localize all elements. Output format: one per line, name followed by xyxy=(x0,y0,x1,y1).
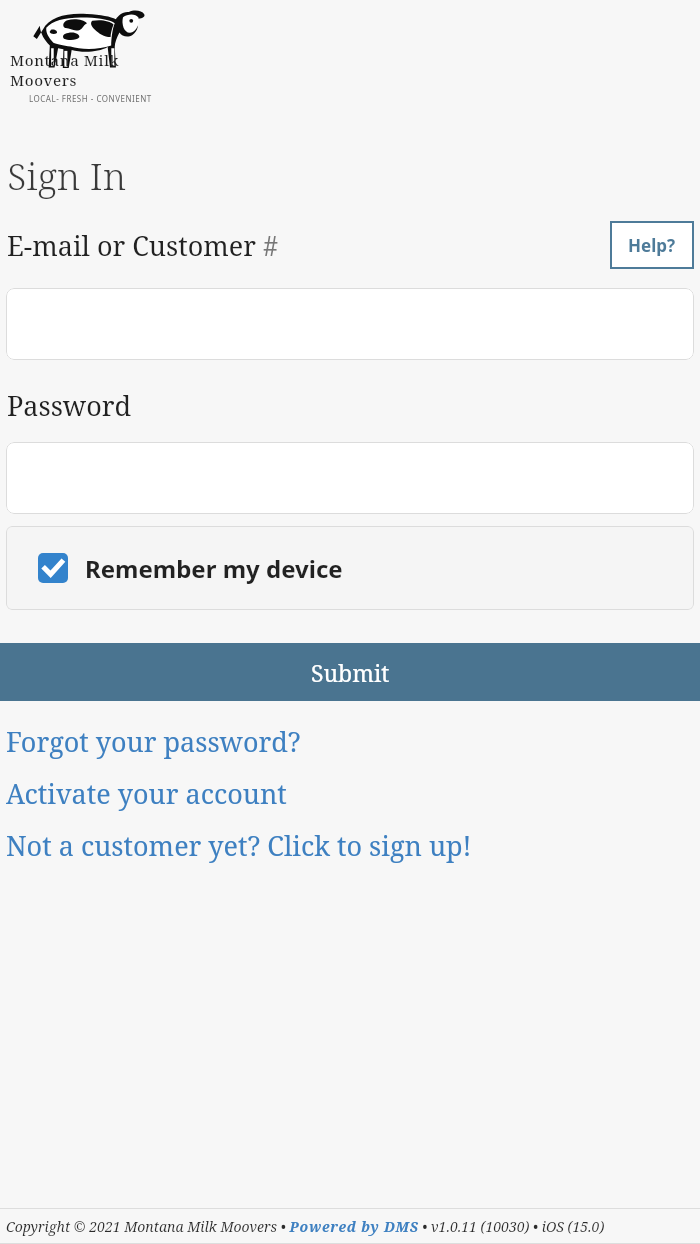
staticText: Forgot your password? xyxy=(6,723,301,759)
staticText: Montana Milk Moovers xyxy=(10,50,170,90)
button[interactable] xyxy=(6,442,694,514)
staticText: Activate your account xyxy=(6,775,287,811)
staticText: Copyright © 2021 Montana Milk Moovers • … xyxy=(6,1217,605,1236)
button[interactable]: Help? xyxy=(610,221,694,269)
staticText: Remember my device xyxy=(85,552,343,585)
button[interactable]: Forgot your password? xyxy=(0,723,700,759)
button[interactable]: Remember my device xyxy=(6,526,694,610)
staticText: Not a customer yet? Click to sign up! xyxy=(6,827,472,863)
staticText: E-mail or Customer # xyxy=(7,227,279,264)
staticText: Help? xyxy=(628,234,676,257)
staticText: Sign In xyxy=(7,150,127,200)
staticText: Password xyxy=(7,387,132,424)
staticText: LOCAL- FRESH - CONVENIENT xyxy=(29,93,152,104)
button[interactable]: Activate your account xyxy=(0,775,700,811)
button[interactable]: Submit xyxy=(0,643,700,701)
staticText: Submit xyxy=(311,657,390,688)
button[interactable]: Not a customer yet? Click to sign up! xyxy=(0,827,700,863)
button[interactable] xyxy=(6,288,694,360)
